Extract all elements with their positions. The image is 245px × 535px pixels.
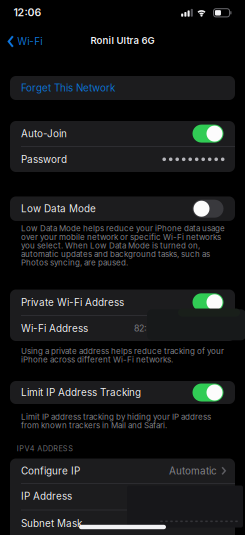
button[interactable]: Back to Wi-Fi [8,35,42,48]
button[interactable]: Private Wi-Fi Address [192,293,223,311]
staticText: Limit IP address tracking by hiding your… [21,412,211,429]
staticText: Limit IP Address Tracking [21,386,141,398]
staticText: Low Data Mode [21,203,96,215]
button[interactable]: Forget This Network [10,76,235,100]
staticText: Automatic [169,465,217,477]
staticText: Private Wi-Fi Address [21,296,124,308]
staticText: IP Address [21,490,72,502]
staticText: Low Data Mode helps reduce your iPhone d… [21,224,225,267]
button[interactable]: Password [10,147,235,172]
staticText: Auto-Join [21,128,67,140]
staticText: 12:06 [13,6,41,19]
button[interactable]: Auto-Join [192,125,223,143]
staticText: Wi-Fi [17,35,42,47]
staticText: Using a private address helps reduce tra… [21,347,224,364]
staticText: 82: [134,323,147,334]
staticText: Wi-Fi Address [21,322,88,334]
button[interactable]: Limit IP Address Tracking [192,383,223,401]
staticText: Password [21,153,67,165]
staticText: Configure IP [21,465,80,477]
staticText: Subnet Mask [21,517,82,529]
staticText: Ronil Ultra 6G [90,35,154,46]
button[interactable]: Configure IP [10,458,235,483]
button[interactable]: Low Data Mode [192,200,223,218]
staticText: IPV4 ADDRESS [17,444,73,453]
staticText: Forget This Network [21,82,115,94]
